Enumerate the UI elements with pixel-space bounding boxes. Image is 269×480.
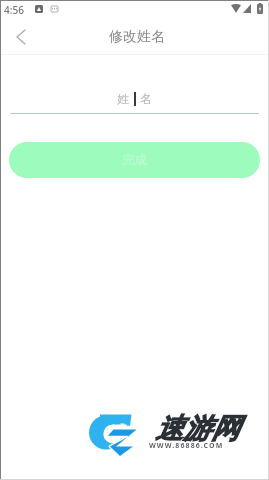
staticText: 名	[140, 91, 152, 106]
staticText: 完成	[122, 152, 147, 168]
staticText: 姓	[117, 91, 129, 106]
staticText: 速游网	[155, 411, 239, 446]
button[interactable]: 完成	[9, 142, 260, 178]
button[interactable]: Back	[6, 18, 36, 55]
staticText: WWW.86886.COM	[149, 441, 224, 451]
staticText: 修改姓名	[109, 28, 165, 46]
staticText: 4:56	[4, 3, 24, 17]
staticText: 速游网	[155, 411, 239, 446]
